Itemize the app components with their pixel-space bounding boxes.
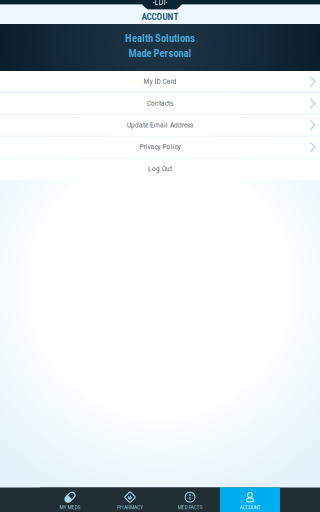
staticText: Contacts: [147, 100, 173, 107]
staticText: Log Out: [148, 165, 172, 173]
button[interactable]: ACCOUNT: [220, 487, 280, 512]
button[interactable]: Log Out: [0, 158, 320, 179]
button[interactable]: PHARMACY: [100, 487, 160, 512]
staticText: Privacy Policy: [139, 143, 180, 151]
button[interactable]: Contacts: [0, 93, 320, 114]
staticText: -LDI-: [152, 0, 167, 7]
button[interactable]: Update Email Address: [0, 115, 320, 136]
staticText: ACCOUNT: [239, 504, 260, 511]
button[interactable]: Privacy Policy: [0, 137, 320, 158]
staticText: MY MEDS: [59, 504, 80, 511]
button[interactable]: MY MEDS: [40, 487, 100, 512]
button[interactable]: MED FACTS: [160, 487, 220, 512]
staticText: Health Solutions: [125, 32, 195, 45]
staticText: PHARMACY: [117, 504, 143, 511]
staticText: MED FACTS: [177, 504, 202, 511]
staticText: My ID Card: [143, 78, 176, 85]
staticText: Made Personal: [128, 47, 191, 59]
staticText: ACCOUNT: [141, 11, 178, 22]
staticText: Update Email Address: [127, 121, 193, 129]
button[interactable]: My ID Card: [0, 71, 320, 92]
